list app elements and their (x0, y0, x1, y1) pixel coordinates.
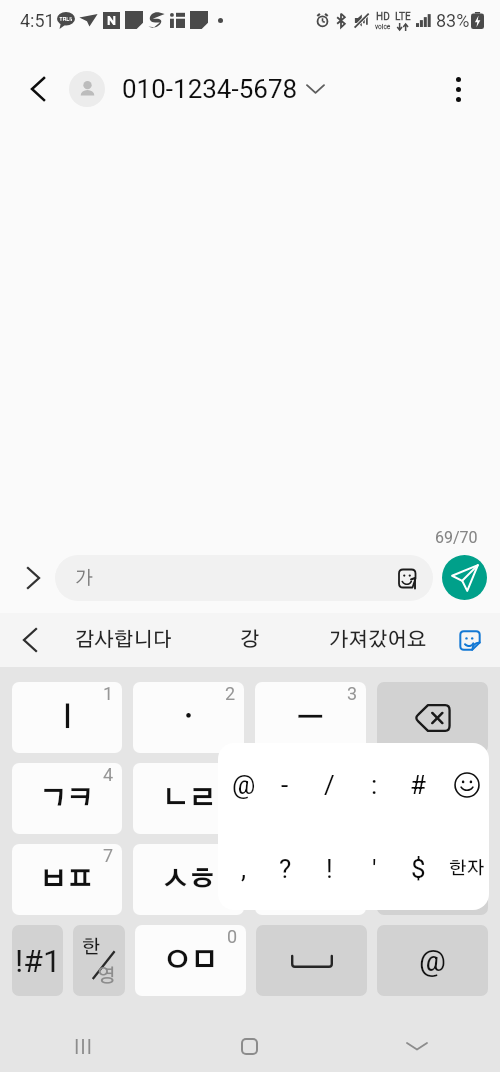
staticText: 7 (103, 845, 114, 866)
button[interactable]: / (308, 743, 350, 827)
staticText: ㅣ (54, 704, 81, 731)
button[interactable]: Home (166, 1020, 333, 1072)
staticText: 1 (103, 683, 114, 704)
button[interactable]: Emoji (393, 563, 423, 593)
staticText: 4 (103, 764, 114, 785)
button[interactable]: del (377, 682, 488, 753)
staticText: LTE (395, 11, 411, 23)
button[interactable]: # (397, 743, 439, 827)
staticText: voice (375, 23, 391, 31)
button[interactable]: ㄷㅌ (255, 763, 366, 834)
button[interactable]: Send (442, 555, 487, 600)
staticText: HD (376, 11, 390, 23)
button[interactable]: ㅡ (255, 682, 366, 753)
staticText: ㅂㅍ (40, 866, 94, 893)
staticText: 2 (225, 683, 236, 704)
button[interactable]: 010-1234-5678 (69, 71, 324, 107)
staticText: 3 (347, 683, 358, 704)
staticText: ㄴㄹ (162, 785, 216, 812)
staticText: 4:51 (20, 10, 55, 31)
staticText: ! (326, 854, 333, 884)
button[interactable]: 한자 (444, 827, 489, 910)
button[interactable]: ㄴㄹ (133, 763, 244, 834)
staticText: ㆍ (175, 704, 202, 731)
staticText: 영 (97, 967, 116, 986)
staticText: 한자 (449, 860, 485, 878)
button[interactable]: @ (223, 743, 265, 827)
button[interactable]: shift (377, 844, 488, 915)
staticText: ㅡ (297, 704, 324, 731)
button[interactable]: 가져갔어요 (314, 615, 442, 665)
staticText: ㄷㅌ (284, 785, 338, 812)
button[interactable]: @ (377, 925, 488, 996)
button[interactable]: 가 (55, 555, 433, 601)
button[interactable]: Expand toolbar (14, 555, 52, 601)
staticText: 5 (225, 764, 236, 785)
button[interactable]: Emoji (446, 743, 488, 827)
button[interactable]: ㄱㅋ (12, 763, 122, 834)
button[interactable]: ? (264, 827, 306, 910)
button[interactable]: ㅇㅁ (135, 925, 246, 996)
button[interactable]: enter (377, 763, 488, 834)
button[interactable]: $ (397, 827, 439, 910)
button[interactable]: ㅂㅍ (12, 844, 122, 915)
button[interactable]: Hide keyboard (333, 1020, 500, 1072)
button[interactable]: : (353, 743, 395, 827)
staticText: ㄱㅋ (40, 785, 94, 812)
staticText: ? (279, 854, 292, 884)
staticText: 0 (227, 926, 238, 947)
staticText: ㅅㅎ (162, 866, 216, 893)
staticText: 한 (82, 938, 101, 957)
staticText: 010-1234-5678 (122, 74, 298, 104)
staticText: @ (419, 943, 446, 978)
button[interactable]: Previous suggestions (12, 620, 48, 660)
staticText: ' (372, 854, 377, 884)
button[interactable]: 감사합니다 (60, 615, 188, 665)
button[interactable]: Space (256, 925, 367, 996)
staticText: 69/70 (435, 528, 478, 547)
staticText: !#1 (15, 942, 61, 980)
button[interactable]: Korean English toggle (73, 925, 125, 996)
staticText: 감사합니다 (75, 630, 173, 650)
button[interactable]: !#1 (12, 925, 63, 996)
staticText: : (371, 770, 378, 800)
button[interactable]: ㅈㅊ (255, 844, 366, 915)
staticText: , (241, 854, 247, 884)
staticText: $ (411, 854, 426, 884)
staticText: 가 (75, 569, 94, 588)
staticText: ㅇㅁ (164, 947, 218, 974)
button[interactable]: Stickers (452, 622, 488, 658)
button[interactable]: ' (353, 827, 395, 910)
button[interactable]: ! (308, 827, 350, 910)
button[interactable]: ㅅㅎ (133, 844, 244, 915)
staticText: 83% (436, 10, 470, 31)
staticText: 가져갔어요 (329, 630, 427, 650)
staticText: @ (232, 770, 256, 800)
button[interactable]: ㆍ (133, 682, 244, 753)
button[interactable]: , (223, 827, 265, 910)
button[interactable]: More options (436, 67, 480, 111)
staticText: 강 (240, 630, 260, 650)
button[interactable]: ㅣ (12, 682, 122, 753)
staticText: ㅈㅊ (284, 866, 338, 893)
staticText: # (410, 770, 427, 800)
button[interactable]: Recents (0, 1020, 166, 1072)
button[interactable]: Back (16, 67, 60, 111)
staticText: - (281, 770, 289, 800)
button[interactable]: - (264, 743, 306, 827)
button[interactable]: 강 (220, 615, 280, 665)
staticText: / (324, 770, 335, 800)
